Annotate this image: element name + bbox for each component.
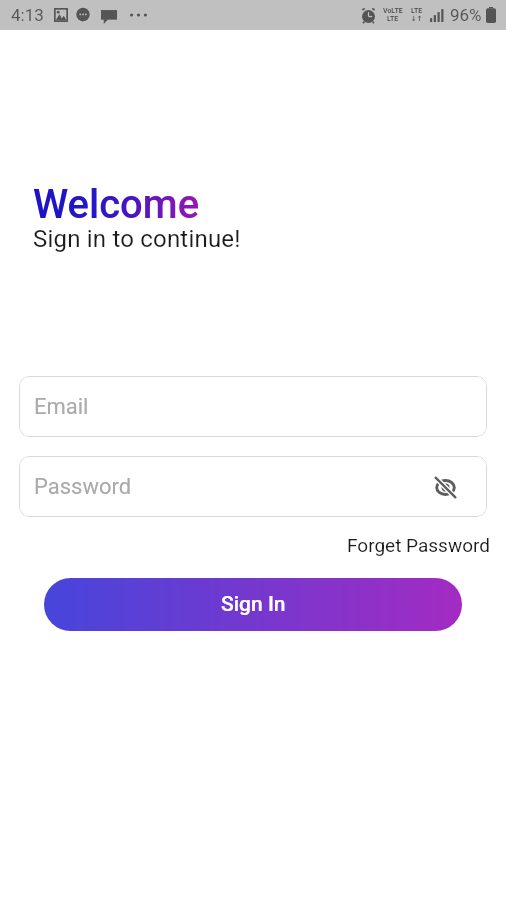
staticText: Email [34, 394, 89, 420]
staticText: ↓↑ [411, 15, 423, 23]
button[interactable]: Password [19, 456, 487, 517]
staticText: LTE [387, 15, 399, 23]
staticText: LTE [411, 7, 423, 15]
button[interactable]: Email [19, 376, 487, 437]
staticText: Password [34, 474, 132, 500]
staticText: Welcome [33, 181, 200, 228]
staticText: VoLTE [383, 7, 403, 15]
button[interactable]: Show password [423, 465, 467, 509]
staticText: Sign in to continue! [33, 225, 241, 253]
staticText: 4:13 [11, 5, 44, 25]
staticText: 96% [450, 5, 482, 25]
staticText: Sign In [221, 592, 286, 617]
button[interactable]: Sign In [44, 578, 462, 631]
button[interactable]: Forget Password [332, 531, 506, 559]
